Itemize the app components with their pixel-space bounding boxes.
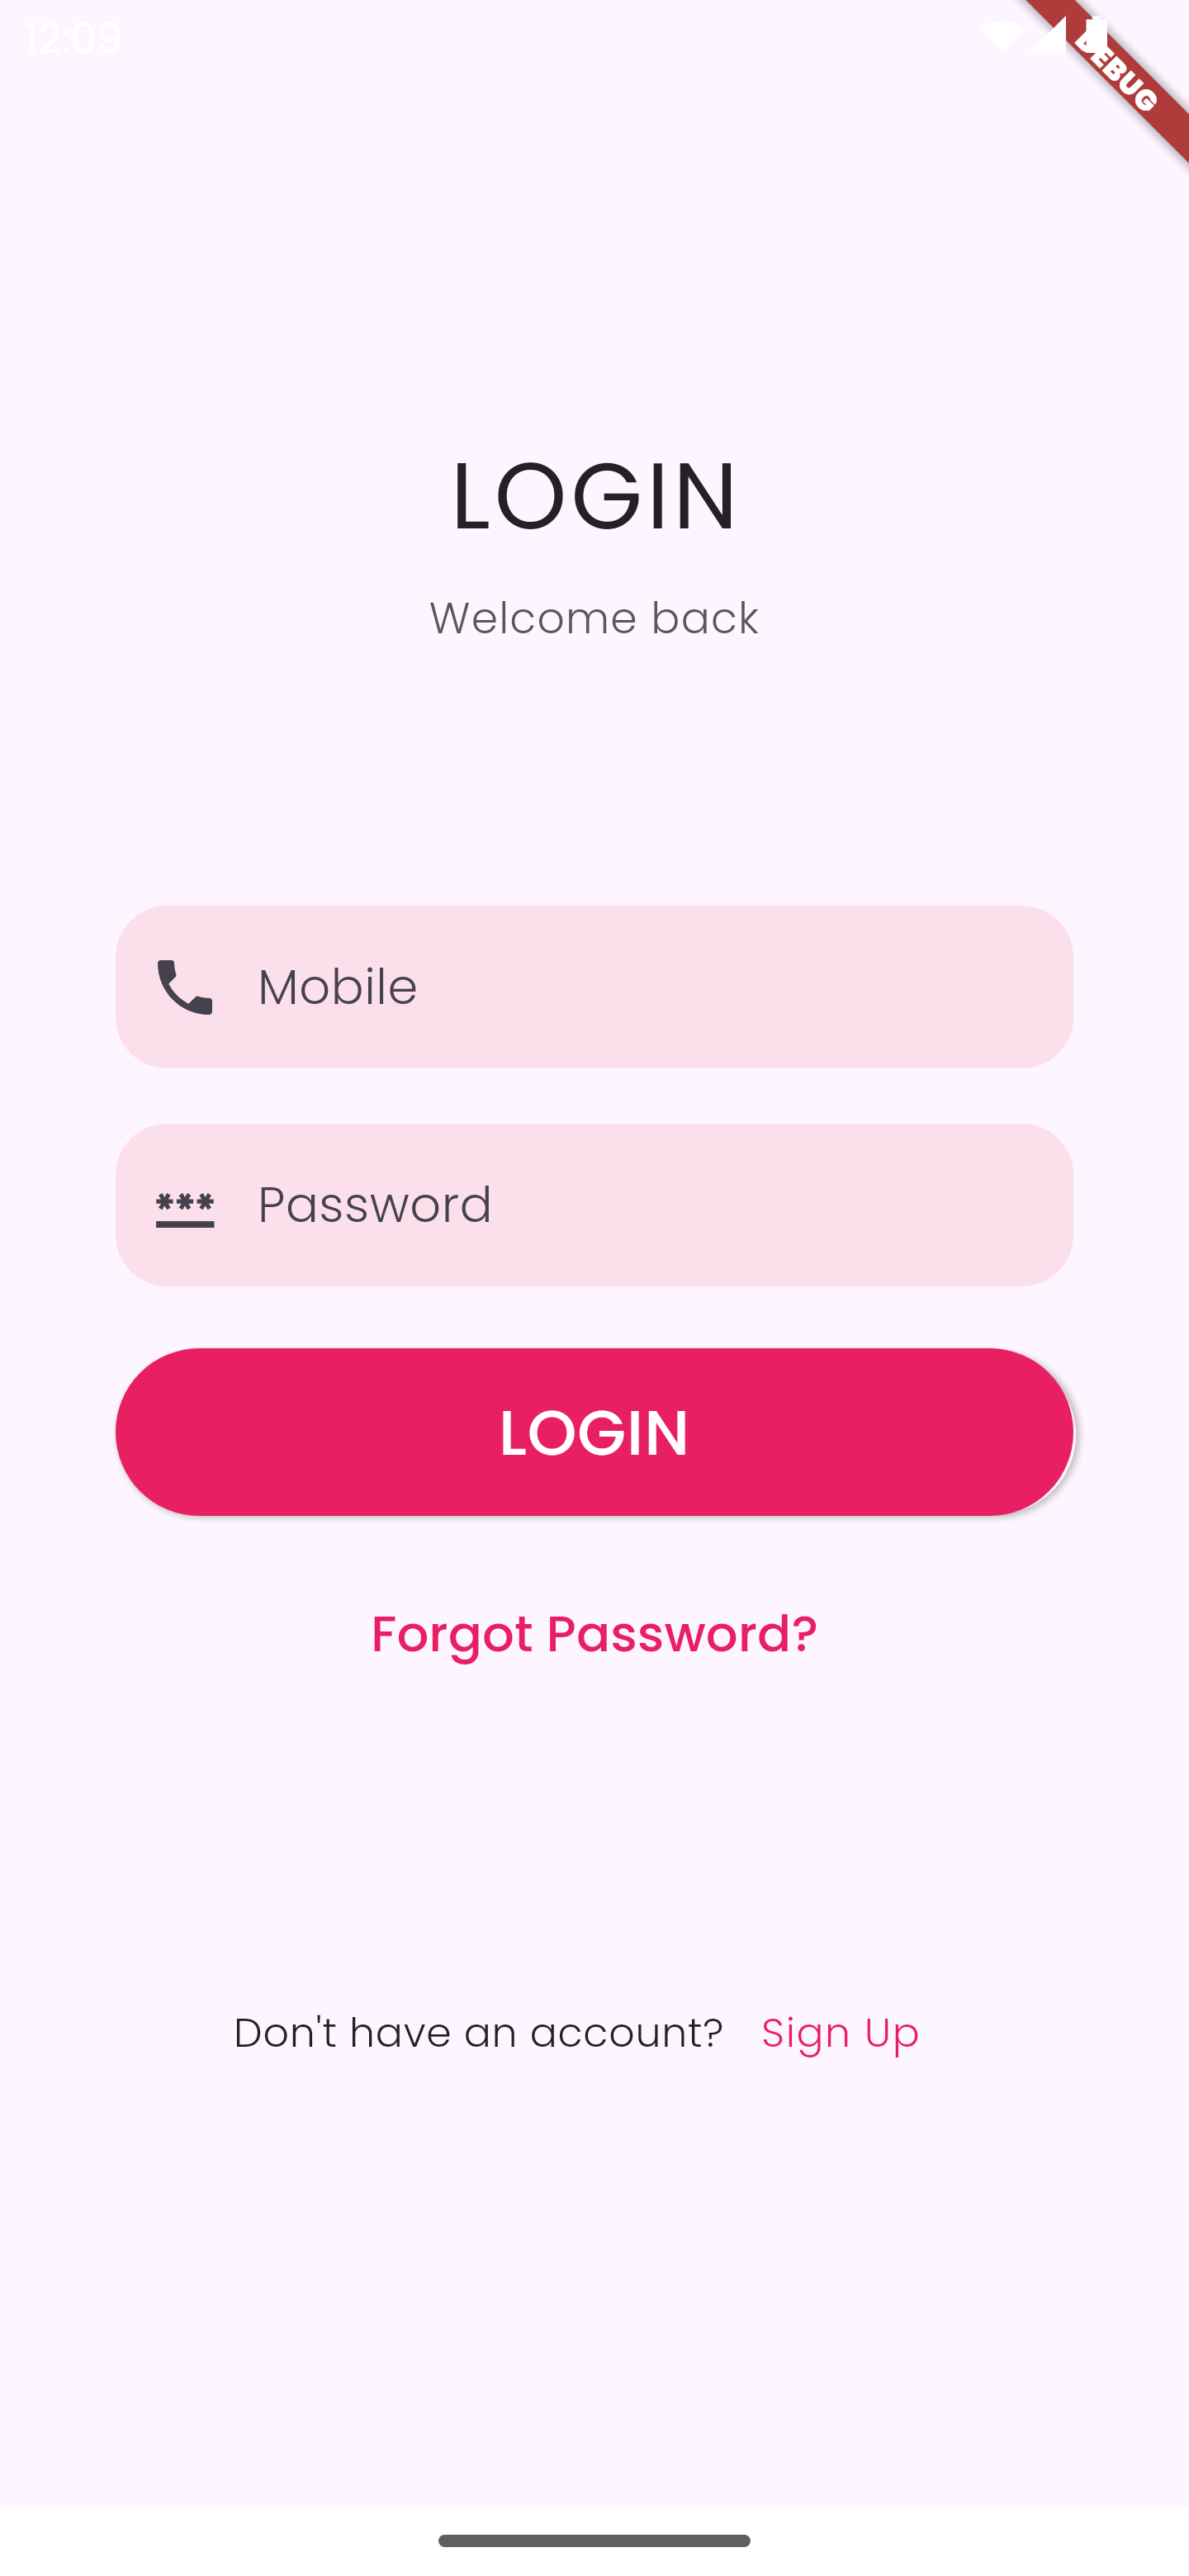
button[interactable]: Sign Up	[761, 2005, 921, 2062]
button[interactable]: LOGIN	[116, 1348, 1073, 1516]
button[interactable]: Mobile	[116, 906, 1073, 1068]
button[interactable]: Password	[116, 1124, 1073, 1286]
staticText: Welcome back	[0, 588, 1189, 648]
staticText: Sign Up	[761, 2005, 921, 2062]
staticText: Forgot Password?	[371, 1598, 819, 1669]
staticText: Password	[258, 1171, 494, 1239]
staticText: Mobile	[258, 953, 419, 1021]
staticText: LOGIN	[499, 1389, 690, 1476]
staticText: DEBUG	[1071, 20, 1169, 118]
staticText: 12:09	[25, 10, 123, 68]
button[interactable]: Forgot Password?	[346, 1585, 844, 1682]
staticText: Don't have an account?	[234, 2005, 725, 2062]
staticText: LOGIN	[2, 431, 1189, 561]
